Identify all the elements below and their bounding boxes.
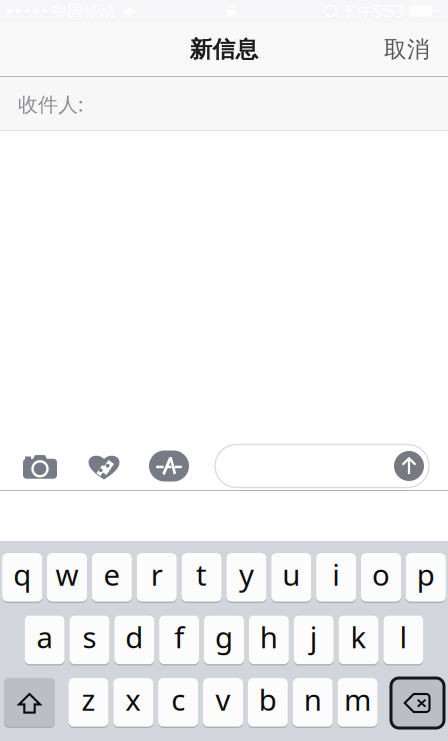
button[interactable]: e xyxy=(92,553,132,603)
button[interactable]: b xyxy=(248,678,288,728)
button[interactable]: Shift xyxy=(4,678,55,728)
button[interactable]: o xyxy=(361,553,401,603)
staticText: x xyxy=(125,680,141,719)
button[interactable]: p xyxy=(406,553,446,603)
staticText: u xyxy=(282,555,300,594)
button[interactable]: m xyxy=(338,678,378,728)
staticText: v xyxy=(215,680,230,719)
staticText: o xyxy=(372,555,390,594)
button[interactable]: Delete xyxy=(391,678,444,728)
staticText: r xyxy=(151,555,163,594)
staticText: 收件人: xyxy=(18,91,83,117)
button[interactable]: s xyxy=(69,615,109,665)
button[interactable]: z xyxy=(68,678,108,728)
staticText: p xyxy=(417,555,435,594)
button[interactable]: 取消 xyxy=(372,26,442,73)
button[interactable]: Camera xyxy=(13,443,67,489)
button[interactable]: Digital Touch xyxy=(77,443,131,489)
button[interactable]: v xyxy=(203,678,243,728)
button[interactable]: i xyxy=(316,553,356,603)
staticText: a xyxy=(37,617,53,656)
button[interactable]: a xyxy=(25,615,65,665)
button[interactable]: j xyxy=(294,615,334,665)
button[interactable]: l xyxy=(383,615,423,665)
staticText: l xyxy=(399,617,407,656)
button[interactable]: x xyxy=(113,678,153,728)
button[interactable]: y xyxy=(226,553,266,603)
staticText: c xyxy=(171,680,185,719)
staticText: m xyxy=(344,680,371,719)
button[interactable]: w xyxy=(47,553,87,603)
button[interactable]: q xyxy=(2,553,42,603)
staticText: y xyxy=(239,555,254,594)
staticText: h xyxy=(260,617,278,656)
staticText: b xyxy=(259,680,277,719)
button[interactable]: u xyxy=(271,553,311,603)
staticText: d xyxy=(125,617,143,656)
button[interactable]: r xyxy=(137,553,177,603)
staticText: f xyxy=(174,617,184,656)
button[interactable]: n xyxy=(293,678,333,728)
staticText: s xyxy=(82,617,96,656)
button[interactable]: d xyxy=(114,615,154,665)
button[interactable]: f xyxy=(159,615,199,665)
staticText: e xyxy=(103,555,120,594)
staticText: 取消 xyxy=(384,36,430,63)
staticText: w xyxy=(55,555,78,594)
button[interactable]: App Store xyxy=(142,443,196,489)
button[interactable]: c xyxy=(158,678,198,728)
staticText: q xyxy=(13,555,31,594)
button[interactable]: k xyxy=(339,615,379,665)
button[interactable]: h xyxy=(249,615,289,665)
staticText: k xyxy=(351,617,367,656)
button[interactable]: t xyxy=(182,553,222,603)
staticText: i xyxy=(332,555,340,594)
staticText: g xyxy=(215,617,233,656)
button[interactable]: Send xyxy=(394,451,424,481)
button[interactable]: g xyxy=(204,615,244,665)
staticText: n xyxy=(304,680,322,719)
staticText: 新信息 xyxy=(189,36,258,63)
staticText: j xyxy=(310,617,318,656)
staticText: z xyxy=(81,680,95,719)
staticText: t xyxy=(196,555,207,594)
button[interactable]: 收件人: xyxy=(0,77,448,131)
